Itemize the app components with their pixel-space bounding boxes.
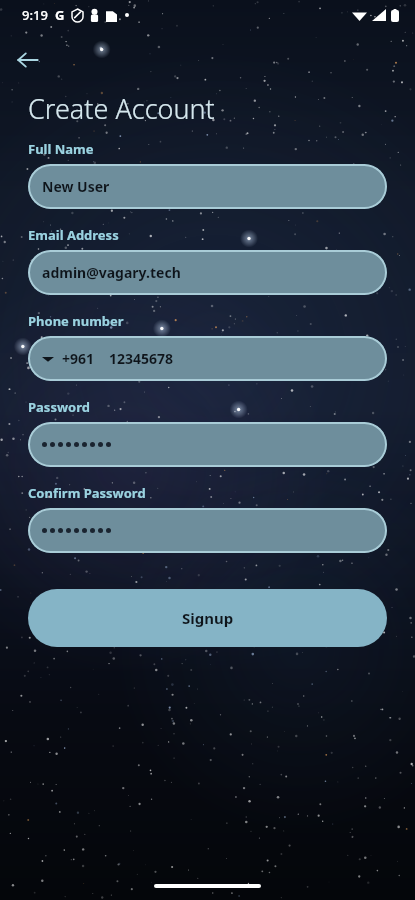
button[interactable] — [28, 422, 387, 467]
staticText: +961 — [62, 349, 95, 368]
staticText: 9:19 — [22, 6, 48, 24]
staticText: New User — [42, 177, 110, 196]
staticText: Password — [28, 398, 90, 416]
button[interactable]: admin@vagary.tech — [28, 250, 387, 295]
staticText: Full Name — [28, 140, 94, 158]
button[interactable]: Signup — [28, 589, 387, 647]
staticText: Confirm Password — [28, 484, 146, 502]
button[interactable]: +961 — [28, 336, 387, 381]
staticText: Signup — [182, 608, 234, 628]
staticText: admin@vagary.tech — [42, 263, 181, 282]
button[interactable] — [28, 508, 387, 553]
staticText: Create Account — [28, 90, 215, 127]
staticText: Phone number — [28, 312, 124, 330]
staticText: 12345678 — [109, 349, 174, 368]
staticText: G — [55, 6, 65, 24]
button[interactable]: Back — [9, 41, 47, 79]
button[interactable]: New User — [28, 164, 387, 209]
staticText: Email Address — [28, 226, 119, 244]
